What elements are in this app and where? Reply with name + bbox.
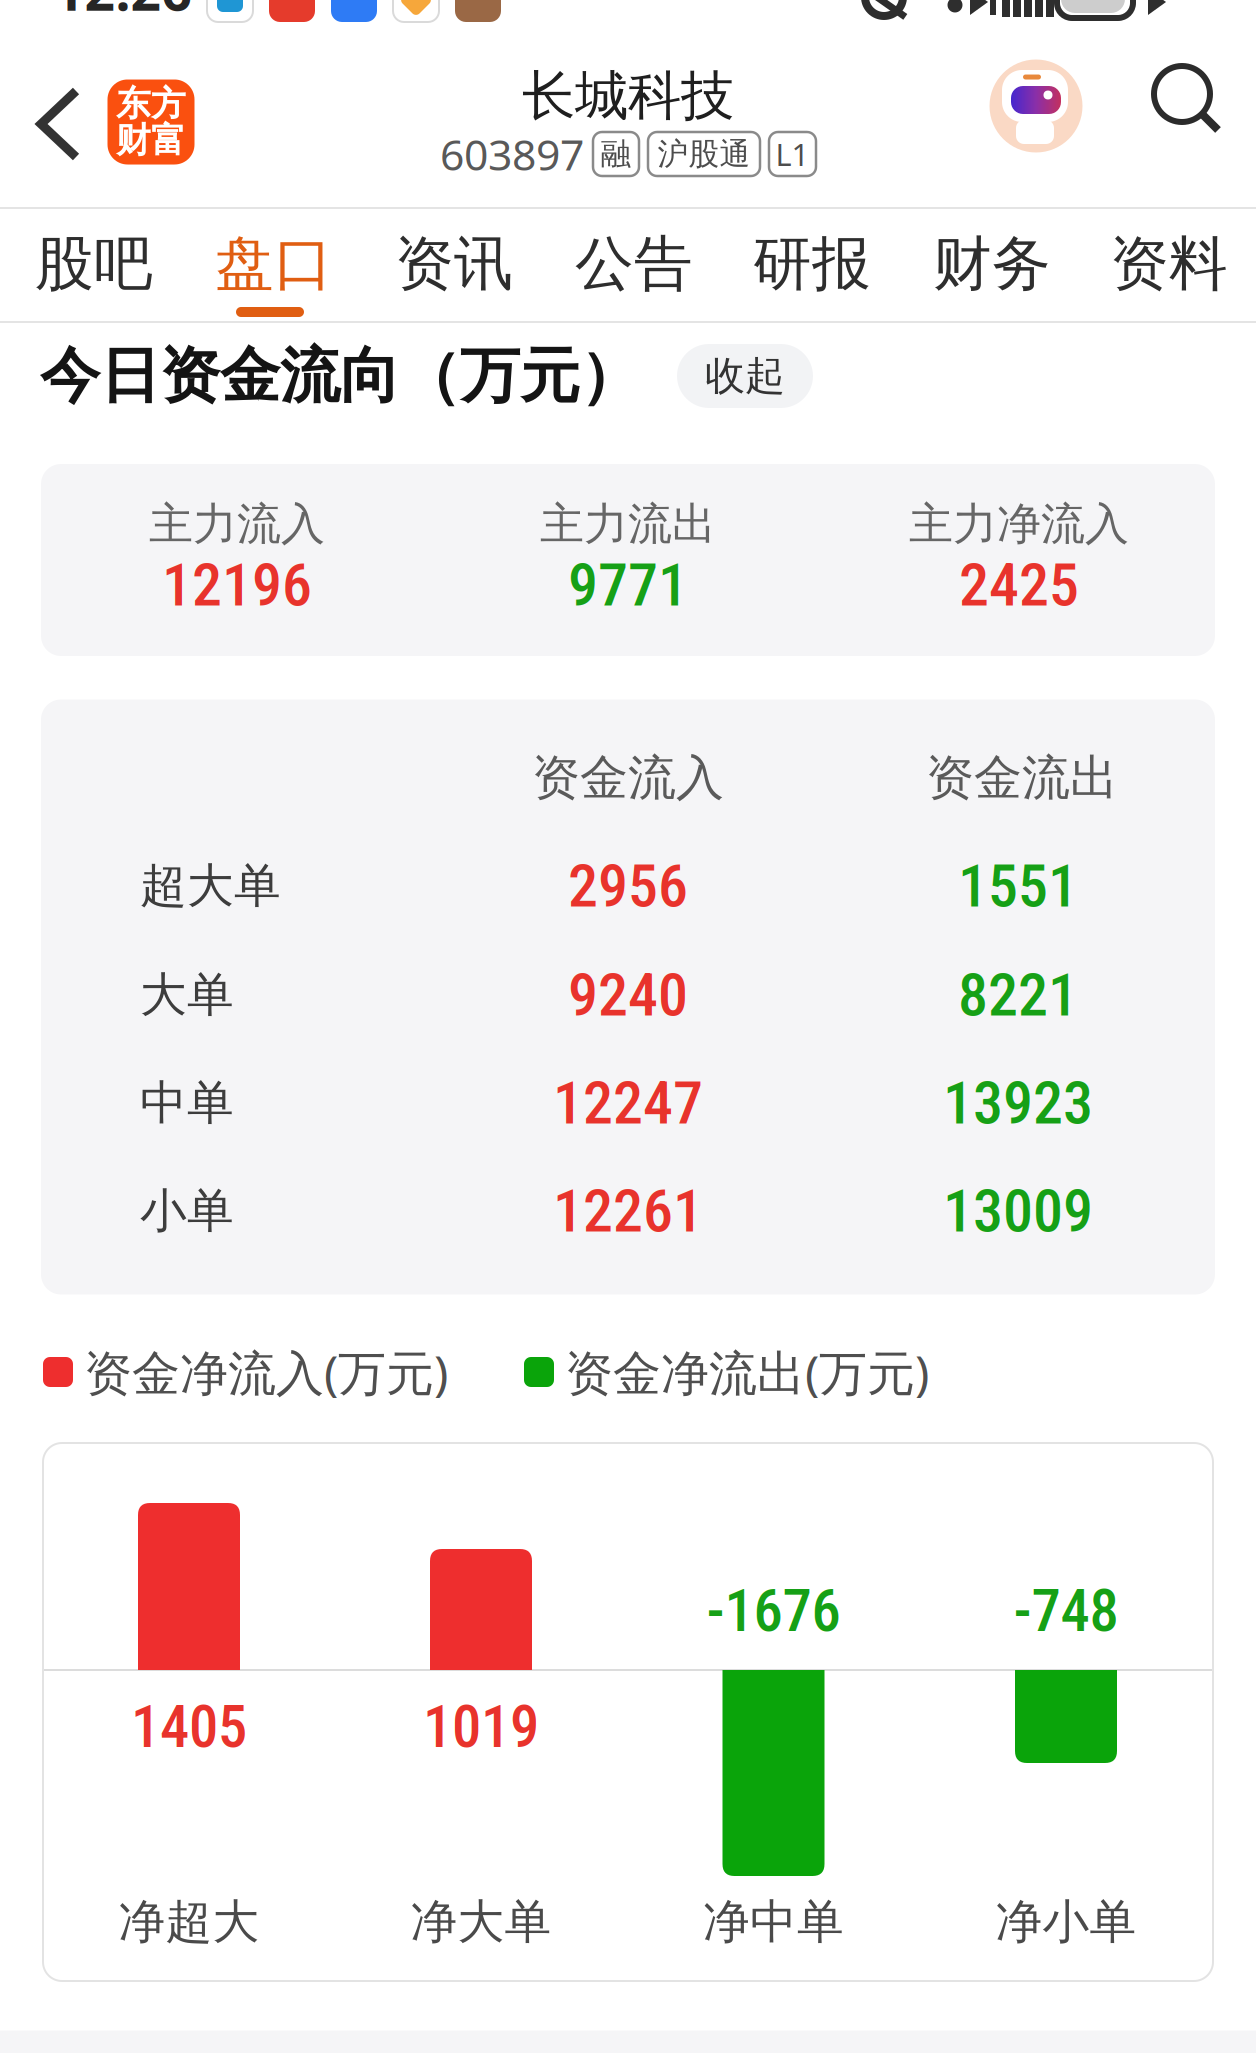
staticText: 东方 xyxy=(116,82,186,125)
button[interactable]: 资讯 xyxy=(374,214,534,314)
button[interactable]: AI assistant xyxy=(989,59,1082,152)
staticText: 今日资金流向（万元） xyxy=(40,339,640,413)
button[interactable]: 收起 xyxy=(677,344,813,408)
staticText: 1405 xyxy=(131,1693,247,1761)
staticText: 9240 xyxy=(568,960,688,1030)
staticText: 603897 xyxy=(440,126,584,182)
button[interactable]: 公告 xyxy=(554,214,714,314)
staticText: 13923 xyxy=(943,1068,1093,1138)
staticText: 8221 xyxy=(958,960,1078,1030)
button[interactable]: 研报 xyxy=(732,214,892,314)
staticText: 9771 xyxy=(568,550,688,620)
staticText: 资讯 xyxy=(395,228,513,300)
button[interactable]: Search xyxy=(1152,68,1228,144)
staticText: 资金流入 xyxy=(532,748,724,807)
button[interactable]: 股吧 xyxy=(14,214,174,314)
staticText: 盘口 xyxy=(215,228,333,300)
staticText: 2425 xyxy=(959,550,1079,620)
staticText: 资金净流入(万元) xyxy=(84,1340,448,1404)
button[interactable]: Back xyxy=(35,86,81,162)
staticText: 净小单 xyxy=(995,1893,1136,1951)
staticText: 收起 xyxy=(705,351,785,400)
button[interactable]: 东方财富 xyxy=(107,79,194,164)
staticText: 中单 xyxy=(140,1074,234,1132)
staticText: 财富 xyxy=(116,119,186,162)
staticText: L1 xyxy=(775,134,809,174)
staticText: 超大单 xyxy=(140,857,281,915)
staticText: 长城科技 xyxy=(522,63,734,129)
staticText: 融 xyxy=(600,135,631,173)
button[interactable]: 资料 xyxy=(1089,214,1249,314)
staticText: 小单 xyxy=(140,1182,234,1240)
staticText: 12196 xyxy=(162,550,312,620)
staticText: 资料 xyxy=(1110,228,1228,300)
staticText: 研报 xyxy=(753,228,871,300)
staticText: 资金流出 xyxy=(926,748,1118,807)
staticText: 1551 xyxy=(958,851,1078,921)
staticText: 主力流入 xyxy=(149,497,325,551)
staticText: 净中单 xyxy=(703,1893,844,1951)
staticText: 主力净流入 xyxy=(909,497,1129,551)
staticText: 1019 xyxy=(423,1693,539,1761)
staticText: 12261 xyxy=(553,1176,703,1246)
staticText: -1676 xyxy=(706,1577,840,1645)
staticText: 净大单 xyxy=(410,1893,551,1951)
staticText: 2956 xyxy=(568,851,688,921)
staticText: -748 xyxy=(1013,1577,1118,1645)
staticText: 13009 xyxy=(943,1176,1093,1246)
staticText: 财务 xyxy=(933,228,1051,300)
staticText: 大单 xyxy=(140,966,234,1024)
staticText: 主力流出 xyxy=(540,497,716,551)
staticText: 12247 xyxy=(553,1068,703,1138)
staticText: 净超大 xyxy=(118,1893,259,1951)
staticText: 股吧 xyxy=(35,228,153,300)
staticText: 沪股通 xyxy=(657,135,750,173)
staticText: 12:26 xyxy=(53,0,192,25)
staticText: 资金净流出(万元) xyxy=(565,1340,929,1404)
button[interactable]: 盘口 xyxy=(194,214,354,314)
staticText: 公告 xyxy=(575,228,693,300)
button[interactable]: 财务 xyxy=(912,214,1072,314)
